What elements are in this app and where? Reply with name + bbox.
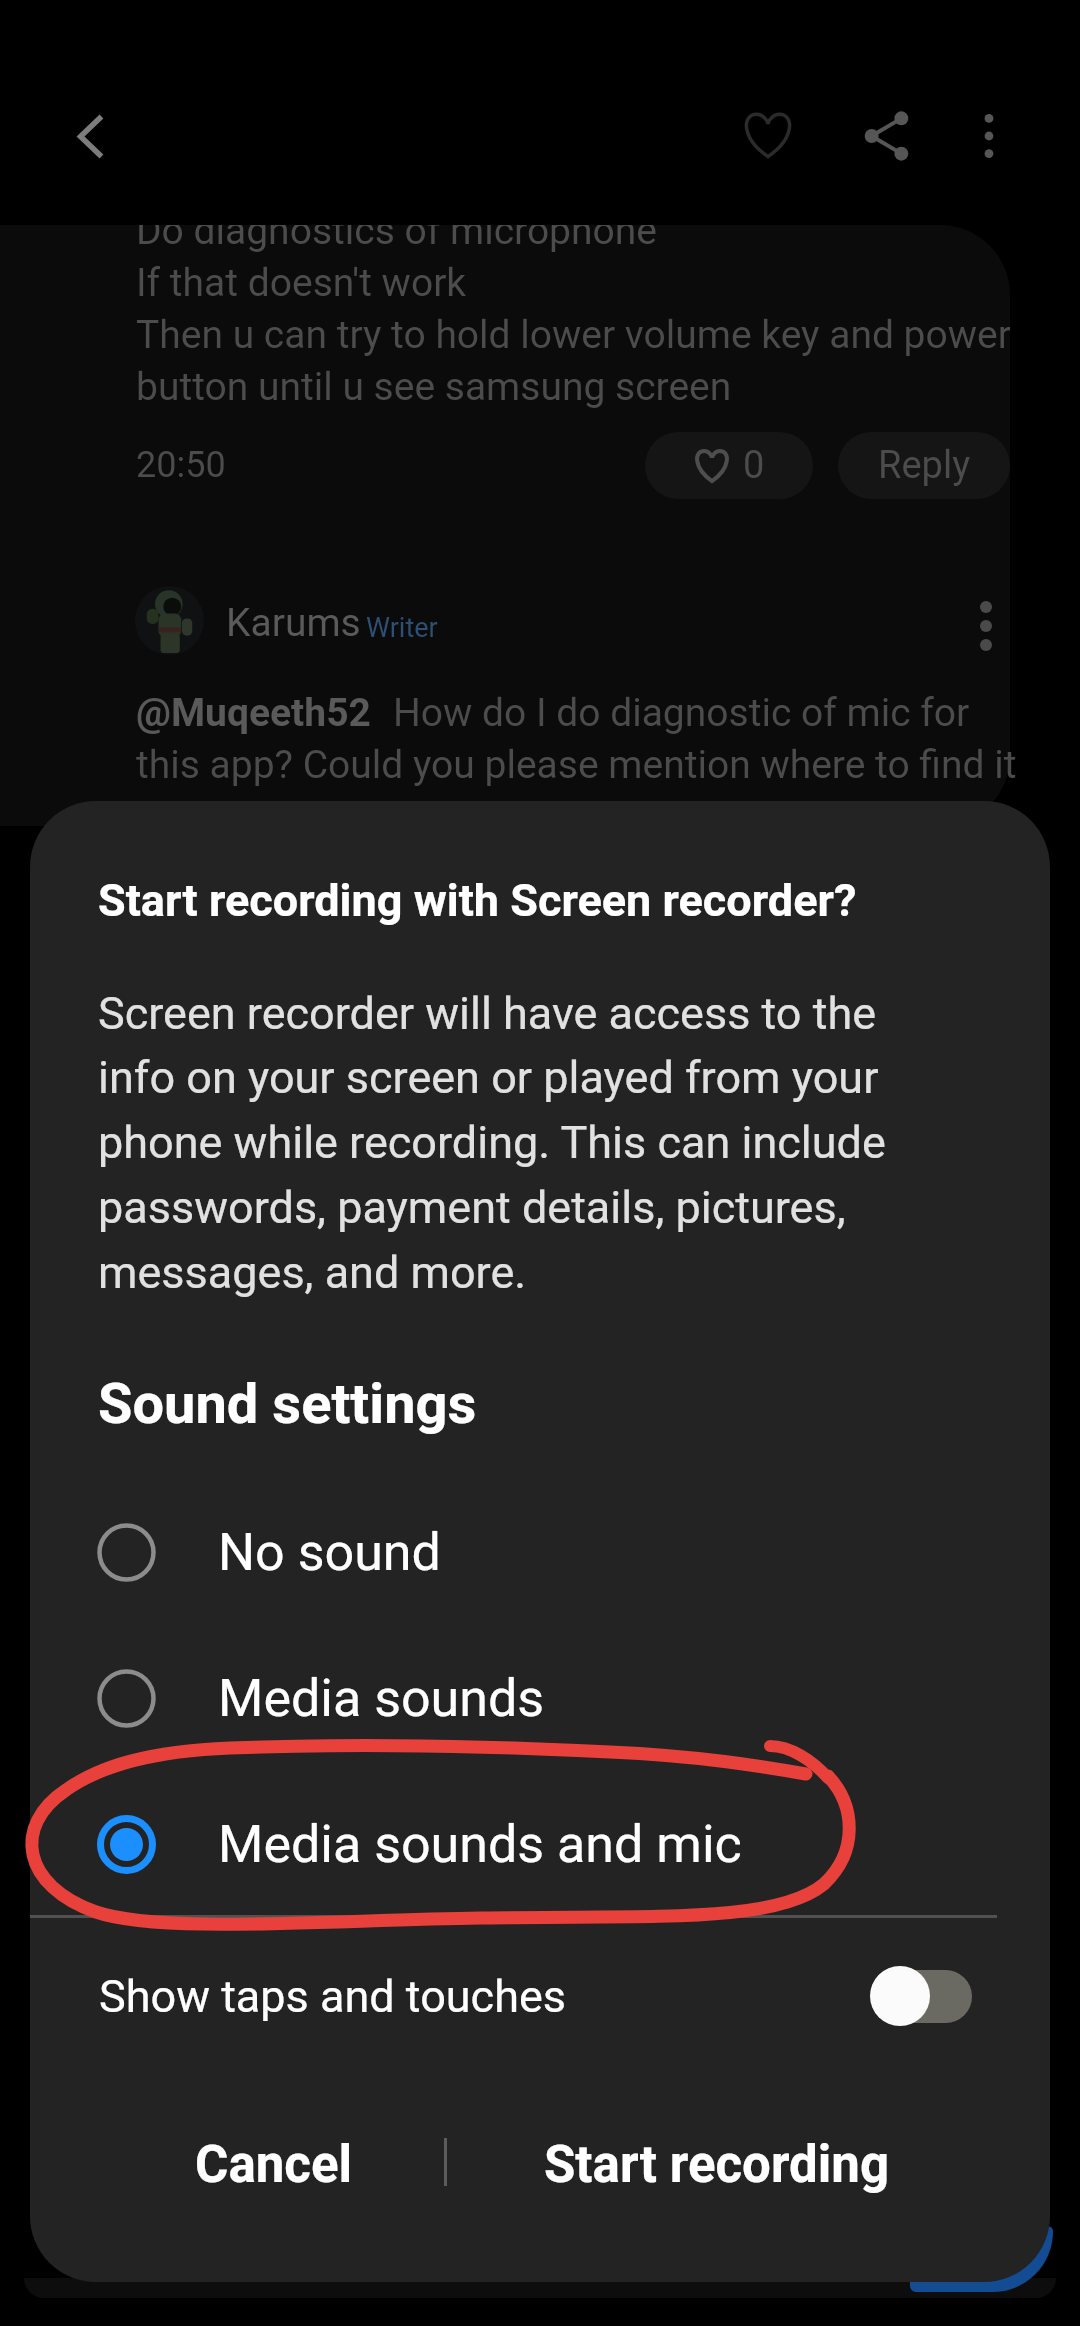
button[interactable]: Back [46, 91, 136, 181]
staticText: Media sounds [218, 1668, 545, 1729]
button[interactable]: Show taps and touches [30, 1931, 1050, 2061]
staticText: Reply [878, 443, 971, 488]
staticText: Writer [366, 612, 438, 644]
staticText: @Muqeeth52 [136, 690, 371, 736]
staticText: How do I do diagnostic of mic for [393, 690, 970, 736]
staticText: 0 [743, 443, 765, 488]
button[interactable]: Favorite [723, 90, 813, 180]
button[interactable]: Show taps and touches [870, 1966, 972, 2026]
staticText: Cancel [195, 2135, 353, 2195]
staticText: Screen recorder will have access to the … [98, 987, 928, 1299]
staticText: Then u can try to hold lower volume key … [136, 312, 1010, 358]
button[interactable]: Media sounds and mic [30, 1771, 1050, 1917]
staticText: Karums [226, 600, 361, 646]
button[interactable]: Start recording [439, 2101, 994, 2229]
staticText: Start recording [544, 2135, 890, 2195]
button[interactable]: Media sounds [30, 1625, 1050, 1771]
staticText: Do diagnostics of microphone [136, 225, 657, 254]
staticText: Start recording with Screen recorder? [98, 874, 857, 927]
staticText: button until u see samsung screen [136, 364, 732, 410]
button[interactable]: Reply [838, 432, 1010, 499]
button[interactable]: Share [841, 91, 931, 181]
button[interactable]: No sound [30, 1479, 1050, 1625]
staticText: this app? Could you please mention where… [136, 742, 1017, 788]
button[interactable]: More options [944, 91, 1034, 181]
staticText: Sound settings [98, 1371, 477, 1437]
staticText: If that doesn't work [136, 260, 467, 306]
staticText: 20:50 [136, 444, 226, 486]
button[interactable]: Cancel [81, 2101, 466, 2229]
staticText: No sound [218, 1522, 441, 1583]
button[interactable]: New post [910, 2226, 1053, 2292]
button[interactable]: 0 [645, 432, 813, 499]
staticText: Show taps and touches [99, 1970, 567, 2023]
staticText: Media sounds and mic [218, 1814, 742, 1875]
